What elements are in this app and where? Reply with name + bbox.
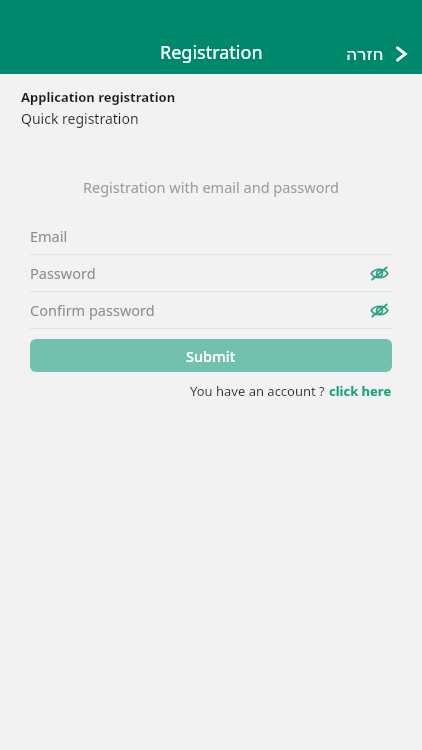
staticText: Password xyxy=(30,263,366,283)
button[interactable]: Show password xyxy=(366,260,392,286)
staticText: Registration with email and password xyxy=(0,177,422,197)
button[interactable]: click here xyxy=(329,382,392,400)
staticText: Submit xyxy=(186,346,236,366)
staticText: You have an account ? xyxy=(190,382,329,400)
staticText: Quick registration xyxy=(21,109,139,128)
button[interactable]: Confirm password xyxy=(0,292,422,328)
button[interactable]: Password xyxy=(0,255,422,291)
staticText: Confirm password xyxy=(30,300,366,320)
staticText: חזרה xyxy=(346,44,384,64)
button[interactable]: Email xyxy=(0,218,422,254)
staticText: Registration xyxy=(160,40,263,65)
button[interactable]: Submit xyxy=(30,339,392,372)
staticText: Email xyxy=(30,226,392,246)
button[interactable]: Show password xyxy=(366,297,392,323)
other: Back xyxy=(390,43,412,65)
staticText: Application registration xyxy=(21,88,176,106)
staticText: click here xyxy=(329,382,392,400)
button[interactable]: חזרה xyxy=(342,39,416,69)
